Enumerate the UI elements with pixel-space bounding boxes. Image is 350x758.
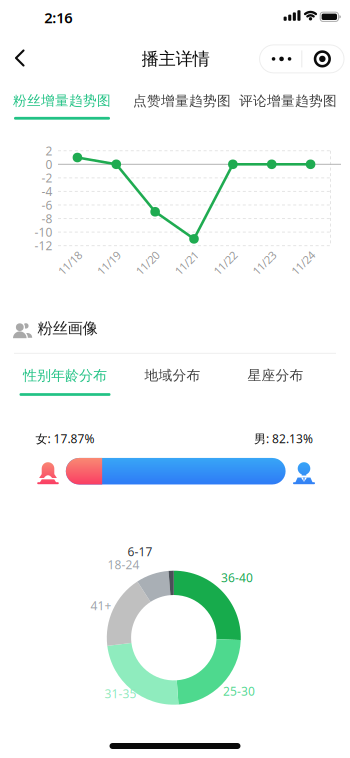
- button[interactable]: 评论增量趋势图: [239, 87, 337, 115]
- staticText: 2:16: [44, 8, 72, 27]
- staticText: 点赞增量趋势图: [133, 93, 231, 109]
- staticText: 女: 17.87%: [35, 430, 94, 446]
- staticText: 11/20: [134, 256, 162, 270]
- button[interactable]: More: [260, 45, 302, 73]
- button[interactable]: Exit: [302, 45, 344, 73]
- staticText: 星座分布: [247, 367, 303, 384]
- staticText: 0: [45, 156, 52, 172]
- button[interactable]: Back: [13, 49, 27, 67]
- staticText: 11/19: [95, 256, 123, 270]
- button[interactable]: 点赞增量趋势图: [133, 87, 231, 115]
- staticText: 男: 82.13%: [254, 430, 313, 446]
- staticText: 性别年龄分布: [23, 367, 107, 384]
- staticText: 6-17: [127, 543, 152, 559]
- staticText: 25-30: [223, 683, 255, 699]
- staticText: -8: [41, 211, 52, 226]
- staticText: 11/22: [211, 256, 239, 270]
- staticText: 18-24: [107, 556, 139, 572]
- staticText: 11/21: [172, 256, 200, 270]
- staticText: 粉丝画像: [37, 319, 97, 338]
- staticText: 粉丝增量趋势图: [13, 92, 111, 109]
- staticText: 11/24: [289, 256, 317, 270]
- staticText: 11/23: [250, 256, 278, 270]
- button[interactable]: 星座分布: [247, 361, 303, 389]
- staticText: -6: [41, 197, 52, 213]
- staticText: -4: [41, 183, 52, 199]
- staticText: 36-40: [221, 569, 253, 585]
- staticText: 评论增量趋势图: [239, 93, 337, 109]
- button[interactable]: 粉丝增量趋势图: [13, 93, 111, 120]
- staticText: 41+: [90, 597, 111, 613]
- staticText: -10: [34, 224, 52, 240]
- staticText: 播主详情: [141, 48, 209, 70]
- staticText: 地域分布: [144, 367, 200, 384]
- staticText: 2: [45, 143, 52, 159]
- button[interactable]: 性别年龄分布: [19, 367, 110, 396]
- staticText: -2: [41, 170, 52, 186]
- staticText: 31-35: [104, 685, 136, 701]
- button[interactable]: 地域分布: [144, 361, 200, 389]
- staticText: -12: [34, 238, 52, 254]
- staticText: 11/18: [56, 256, 84, 270]
